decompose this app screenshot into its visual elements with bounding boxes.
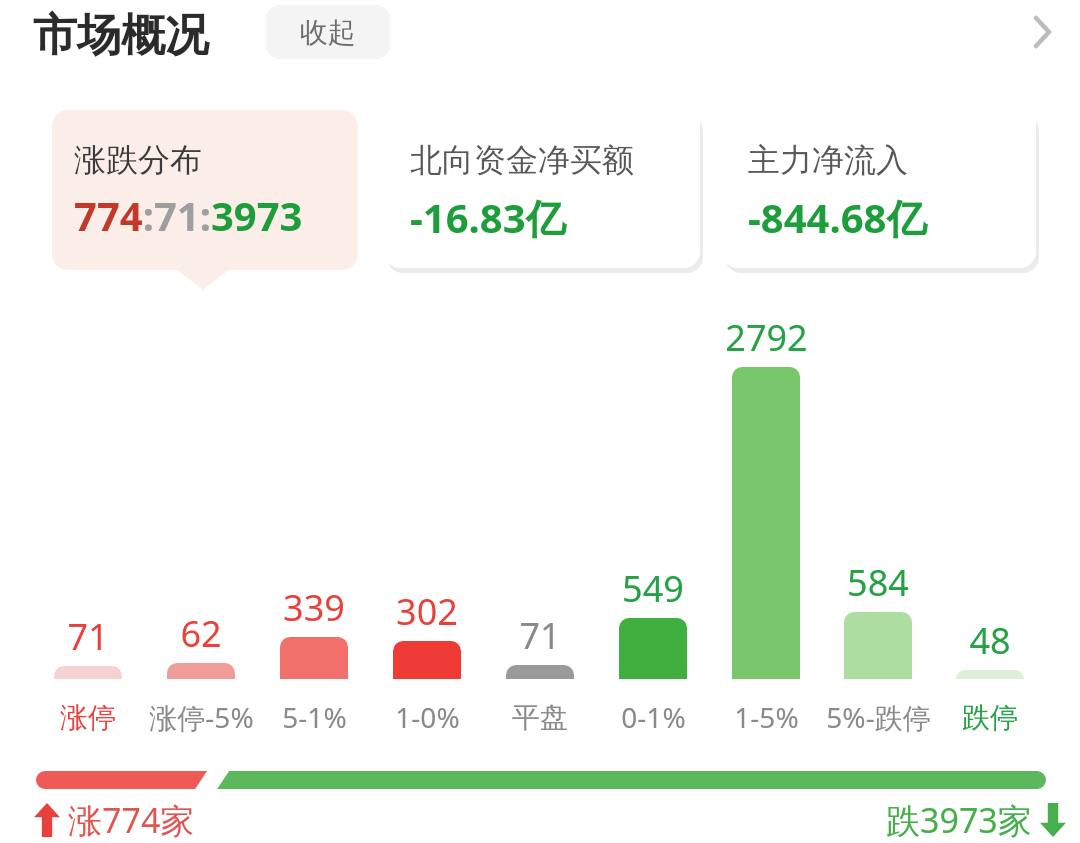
button[interactable]: 62 — [141, 607, 261, 659]
staticText: 市场概况 — [33, 8, 209, 63]
staticText: 收起 — [300, 15, 356, 50]
button[interactable]: 主力净流入 — [722, 110, 1036, 268]
staticText: 涨停-5% — [149, 698, 254, 736]
staticText: 71 — [67, 612, 109, 661]
button[interactable]: 302 — [367, 585, 487, 637]
button[interactable]: 涨跌分布 — [52, 110, 358, 270]
button[interactable]: 48 — [930, 614, 1050, 666]
staticText: 平盘 — [512, 700, 568, 735]
staticText: 0-1% — [621, 698, 686, 736]
button[interactable]: 收起 — [266, 5, 390, 59]
button[interactable]: 更多 — [1012, 2, 1072, 62]
staticText: 2792 — [725, 313, 808, 362]
staticText: 涨停 — [60, 700, 116, 735]
button[interactable]: 339 — [254, 581, 374, 633]
staticText: 302 — [396, 587, 458, 636]
staticText: 1-0% — [395, 698, 460, 736]
staticText: 71 — [519, 611, 561, 660]
staticText: 主力净流入 — [748, 140, 908, 180]
staticText: 跌停 — [962, 700, 1018, 735]
button[interactable]: 584 — [818, 556, 938, 608]
staticText: 774:71:3973 — [74, 188, 303, 242]
staticText: 涨774家 — [68, 797, 195, 843]
staticText: 1-5% — [734, 698, 799, 736]
button[interactable]: 跌3973家 — [886, 797, 1066, 843]
button[interactable]: 549 — [593, 562, 713, 614]
staticText: -16.83亿 — [410, 190, 566, 245]
staticText: 339 — [283, 583, 345, 632]
staticText: 跌3973家 — [886, 797, 1032, 843]
staticText: 涨跌分布 — [74, 140, 202, 180]
staticText: 584 — [847, 558, 909, 607]
button[interactable]: 71 — [28, 610, 148, 662]
staticText: -844.68亿 — [748, 190, 927, 245]
button[interactable]: 2792 — [706, 311, 826, 363]
staticText: 62 — [180, 609, 222, 658]
button[interactable]: 71 — [480, 609, 600, 661]
staticText: 549 — [622, 564, 684, 613]
staticText: 北向资金净买额 — [410, 140, 634, 180]
button[interactable]: 涨774家 — [34, 797, 195, 843]
button[interactable]: 北向资金净买额 — [384, 110, 700, 268]
staticText: 5-1% — [282, 698, 347, 736]
staticText: 5%-跌停 — [826, 698, 931, 736]
staticText: 48 — [969, 616, 1011, 665]
